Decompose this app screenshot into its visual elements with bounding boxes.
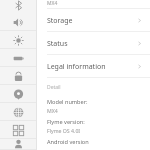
staticText: Legal information (47, 62, 106, 72)
staticText: Status (47, 39, 68, 49)
button[interactable]: Apps (0, 121, 37, 139)
staticText: Model number: (47, 98, 88, 106)
button[interactable]: Location (0, 85, 37, 103)
button[interactable]: Battery (0, 49, 37, 67)
button[interactable]: Legal information (37, 55, 150, 78)
button[interactable]: Security (0, 67, 37, 85)
button[interactable]: Android version (37, 135, 150, 147)
button[interactable]: Flyme version: (37, 115, 150, 135)
button[interactable]: Brightness (0, 31, 37, 49)
button[interactable]: Sound (0, 13, 37, 31)
staticText: Detail (47, 84, 61, 91)
button[interactable]: Model number: (37, 95, 150, 115)
button[interactable]: More (0, 139, 37, 150)
button[interactable]: Network (0, 103, 37, 121)
staticText: MX4 (47, 0, 58, 7)
staticText: Flyme OS 4.0I (47, 127, 81, 134)
staticText: Android version (47, 138, 89, 146)
staticText: MX4 (47, 107, 58, 114)
button[interactable]: Status (37, 32, 150, 55)
button[interactable]: Bluetooth (0, 0, 37, 13)
staticText: Storage (47, 16, 73, 26)
staticText: Flyme version: (47, 118, 85, 126)
button[interactable]: Storage (37, 9, 150, 32)
